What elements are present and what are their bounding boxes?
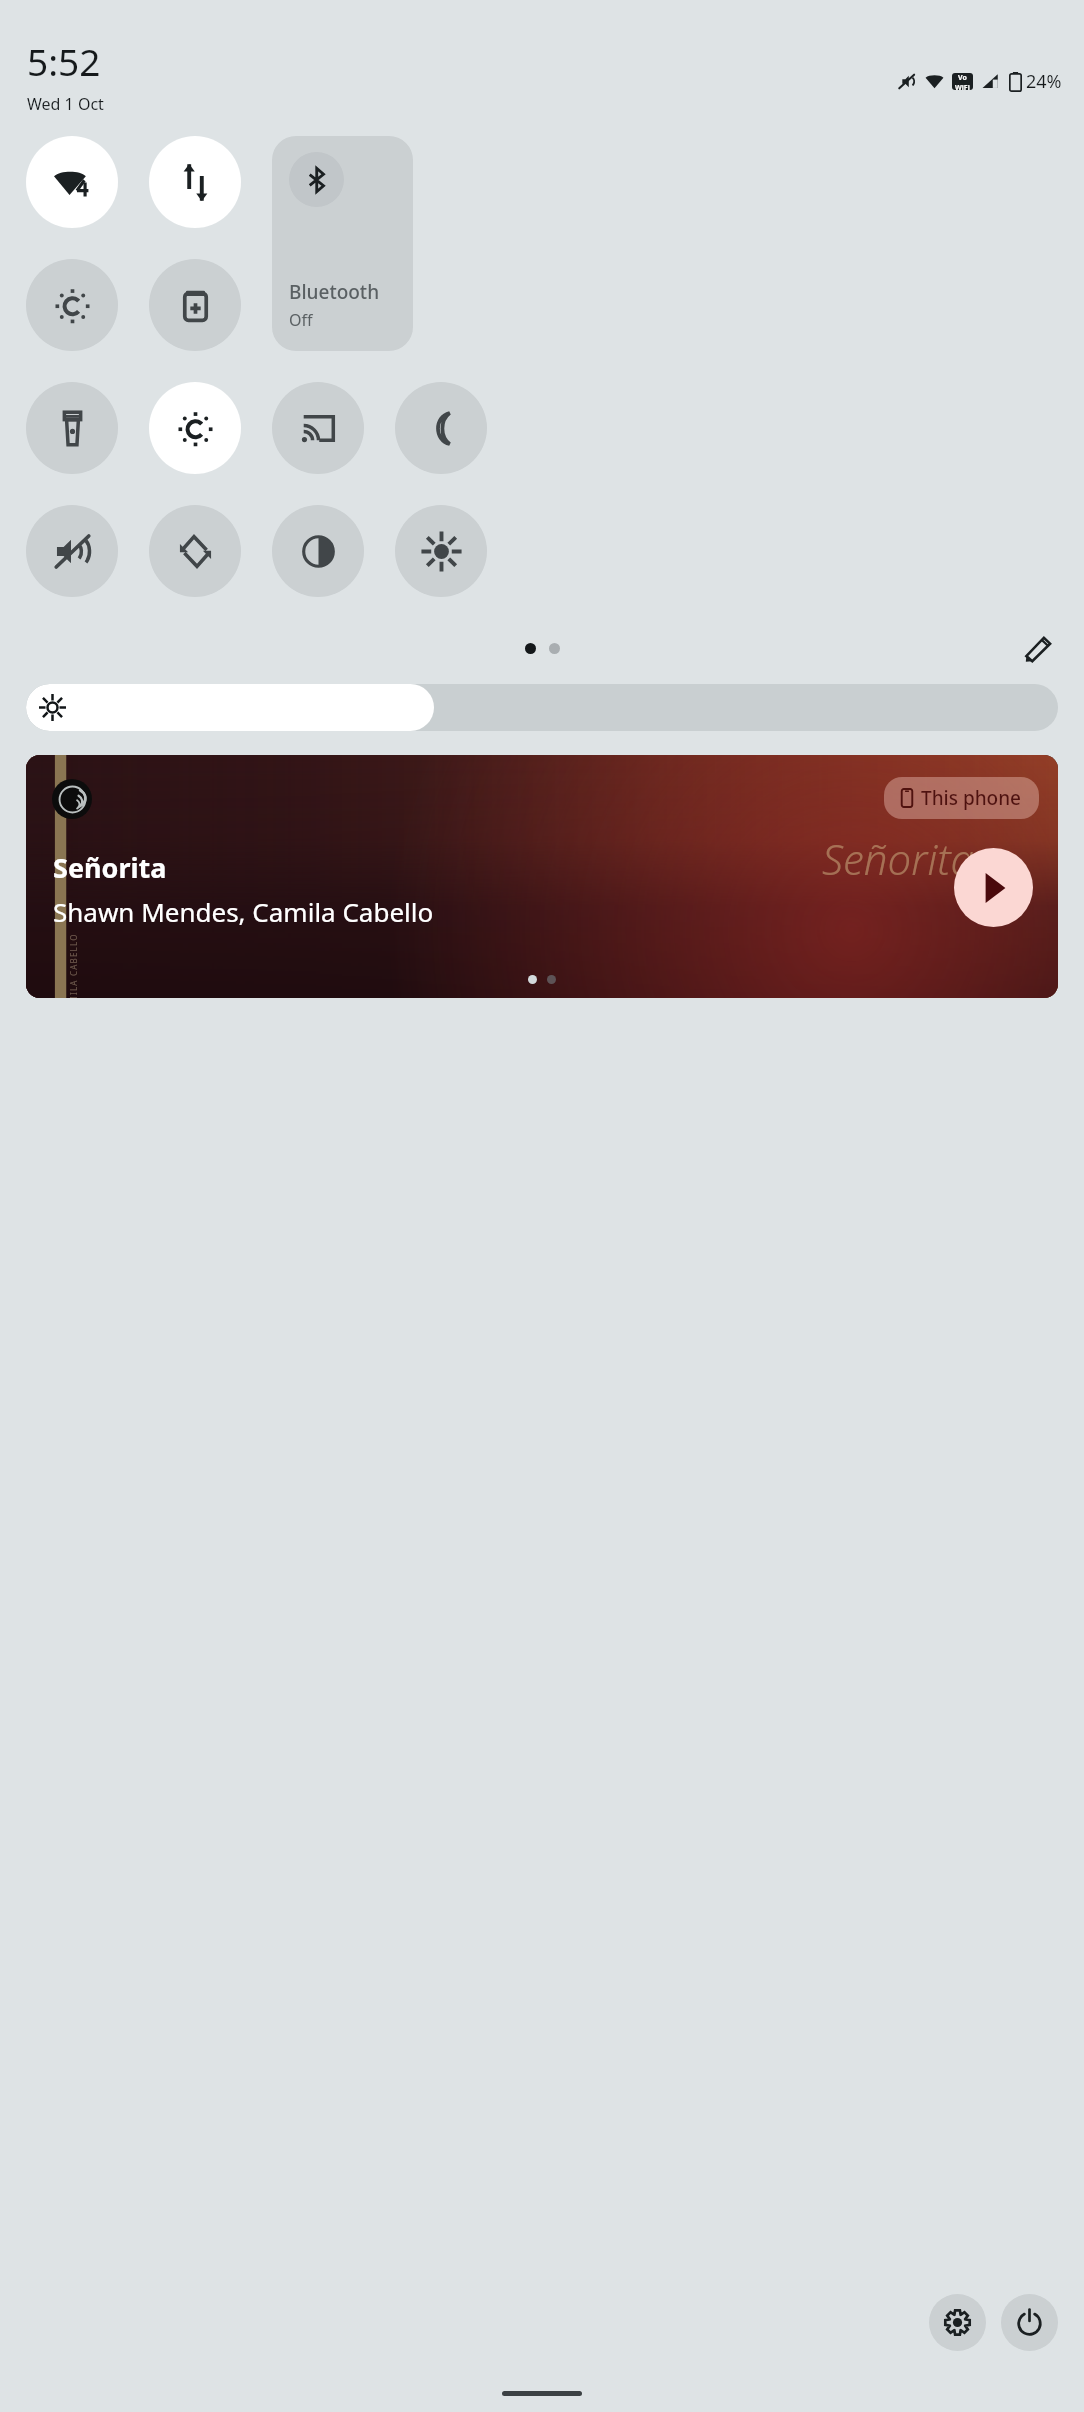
button[interactable]: Señorita xyxy=(26,755,1058,998)
staticText: This phone xyxy=(921,785,1022,811)
button[interactable]: Battery saver xyxy=(149,259,241,351)
staticText: Bluetooth xyxy=(289,279,380,305)
staticText: Señorita xyxy=(53,849,167,886)
staticText: WiFi xyxy=(955,83,970,90)
button[interactable]: Do not disturb xyxy=(395,382,487,474)
button[interactable]: Mute xyxy=(26,505,118,597)
button[interactable]: Edit tiles xyxy=(1014,626,1062,670)
staticText: Señorita xyxy=(822,830,974,887)
button[interactable]: Auto brightness xyxy=(26,259,118,351)
staticText: Off xyxy=(289,309,313,331)
button[interactable]: Brightness xyxy=(26,684,1058,731)
button[interactable]: Screen cast xyxy=(272,382,364,474)
staticText: Wed 1 Oct xyxy=(27,93,104,115)
button[interactable]: Bluetooth xyxy=(272,136,413,351)
button[interactable]: Colour inversion xyxy=(272,505,364,597)
button[interactable]: Mobile data xyxy=(149,136,241,228)
staticText: 5:52 xyxy=(27,36,101,86)
button[interactable]: Settings xyxy=(929,2294,986,2351)
button[interactable]: Play xyxy=(954,848,1033,927)
staticText: Vo xyxy=(958,73,967,83)
staticText: 24% xyxy=(1026,69,1062,94)
button[interactable]: Extra dim xyxy=(395,505,487,597)
button[interactable]: Auto rotate xyxy=(149,505,241,597)
button[interactable]: Flashlight xyxy=(26,382,118,474)
button[interactable]: Dark theme xyxy=(149,382,241,474)
button[interactable]: Wi-Fi xyxy=(26,136,118,228)
button[interactable]: This phone xyxy=(884,777,1039,819)
button[interactable]: Power xyxy=(1001,2294,1058,2351)
staticText: CAMILA CABELLO xyxy=(68,933,79,998)
staticText: Shawn Mendes, Camila Cabello xyxy=(53,894,434,929)
